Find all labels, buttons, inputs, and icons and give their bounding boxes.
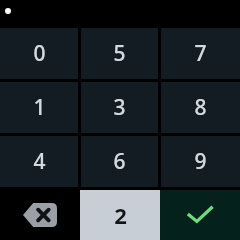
staticText: 1 xyxy=(33,93,46,122)
button[interactable]: 1 xyxy=(0,82,78,133)
staticText: 3 xyxy=(113,93,126,122)
button[interactable]: Backspace xyxy=(0,190,80,240)
button[interactable]: 3 xyxy=(81,82,158,133)
staticText: 9 xyxy=(194,147,207,176)
button[interactable]: 0 xyxy=(0,28,78,79)
staticText: 7 xyxy=(194,39,207,68)
staticText: 8 xyxy=(194,93,207,122)
button[interactable]: 9 xyxy=(161,136,240,187)
button[interactable]: 5 xyxy=(81,28,158,79)
staticText: 5 xyxy=(113,39,126,68)
button[interactable]: 7 xyxy=(161,28,240,79)
staticText: 4 xyxy=(33,147,46,176)
staticText: 0 xyxy=(33,39,46,68)
button[interactable]: Confirm xyxy=(160,190,240,240)
staticText: 2 xyxy=(114,200,127,230)
staticText: 6 xyxy=(113,147,126,176)
button[interactable]: 6 xyxy=(81,136,158,187)
button[interactable]: 4 xyxy=(0,136,78,187)
button[interactable]: 8 xyxy=(161,82,240,133)
button[interactable]: 2 xyxy=(80,190,160,240)
